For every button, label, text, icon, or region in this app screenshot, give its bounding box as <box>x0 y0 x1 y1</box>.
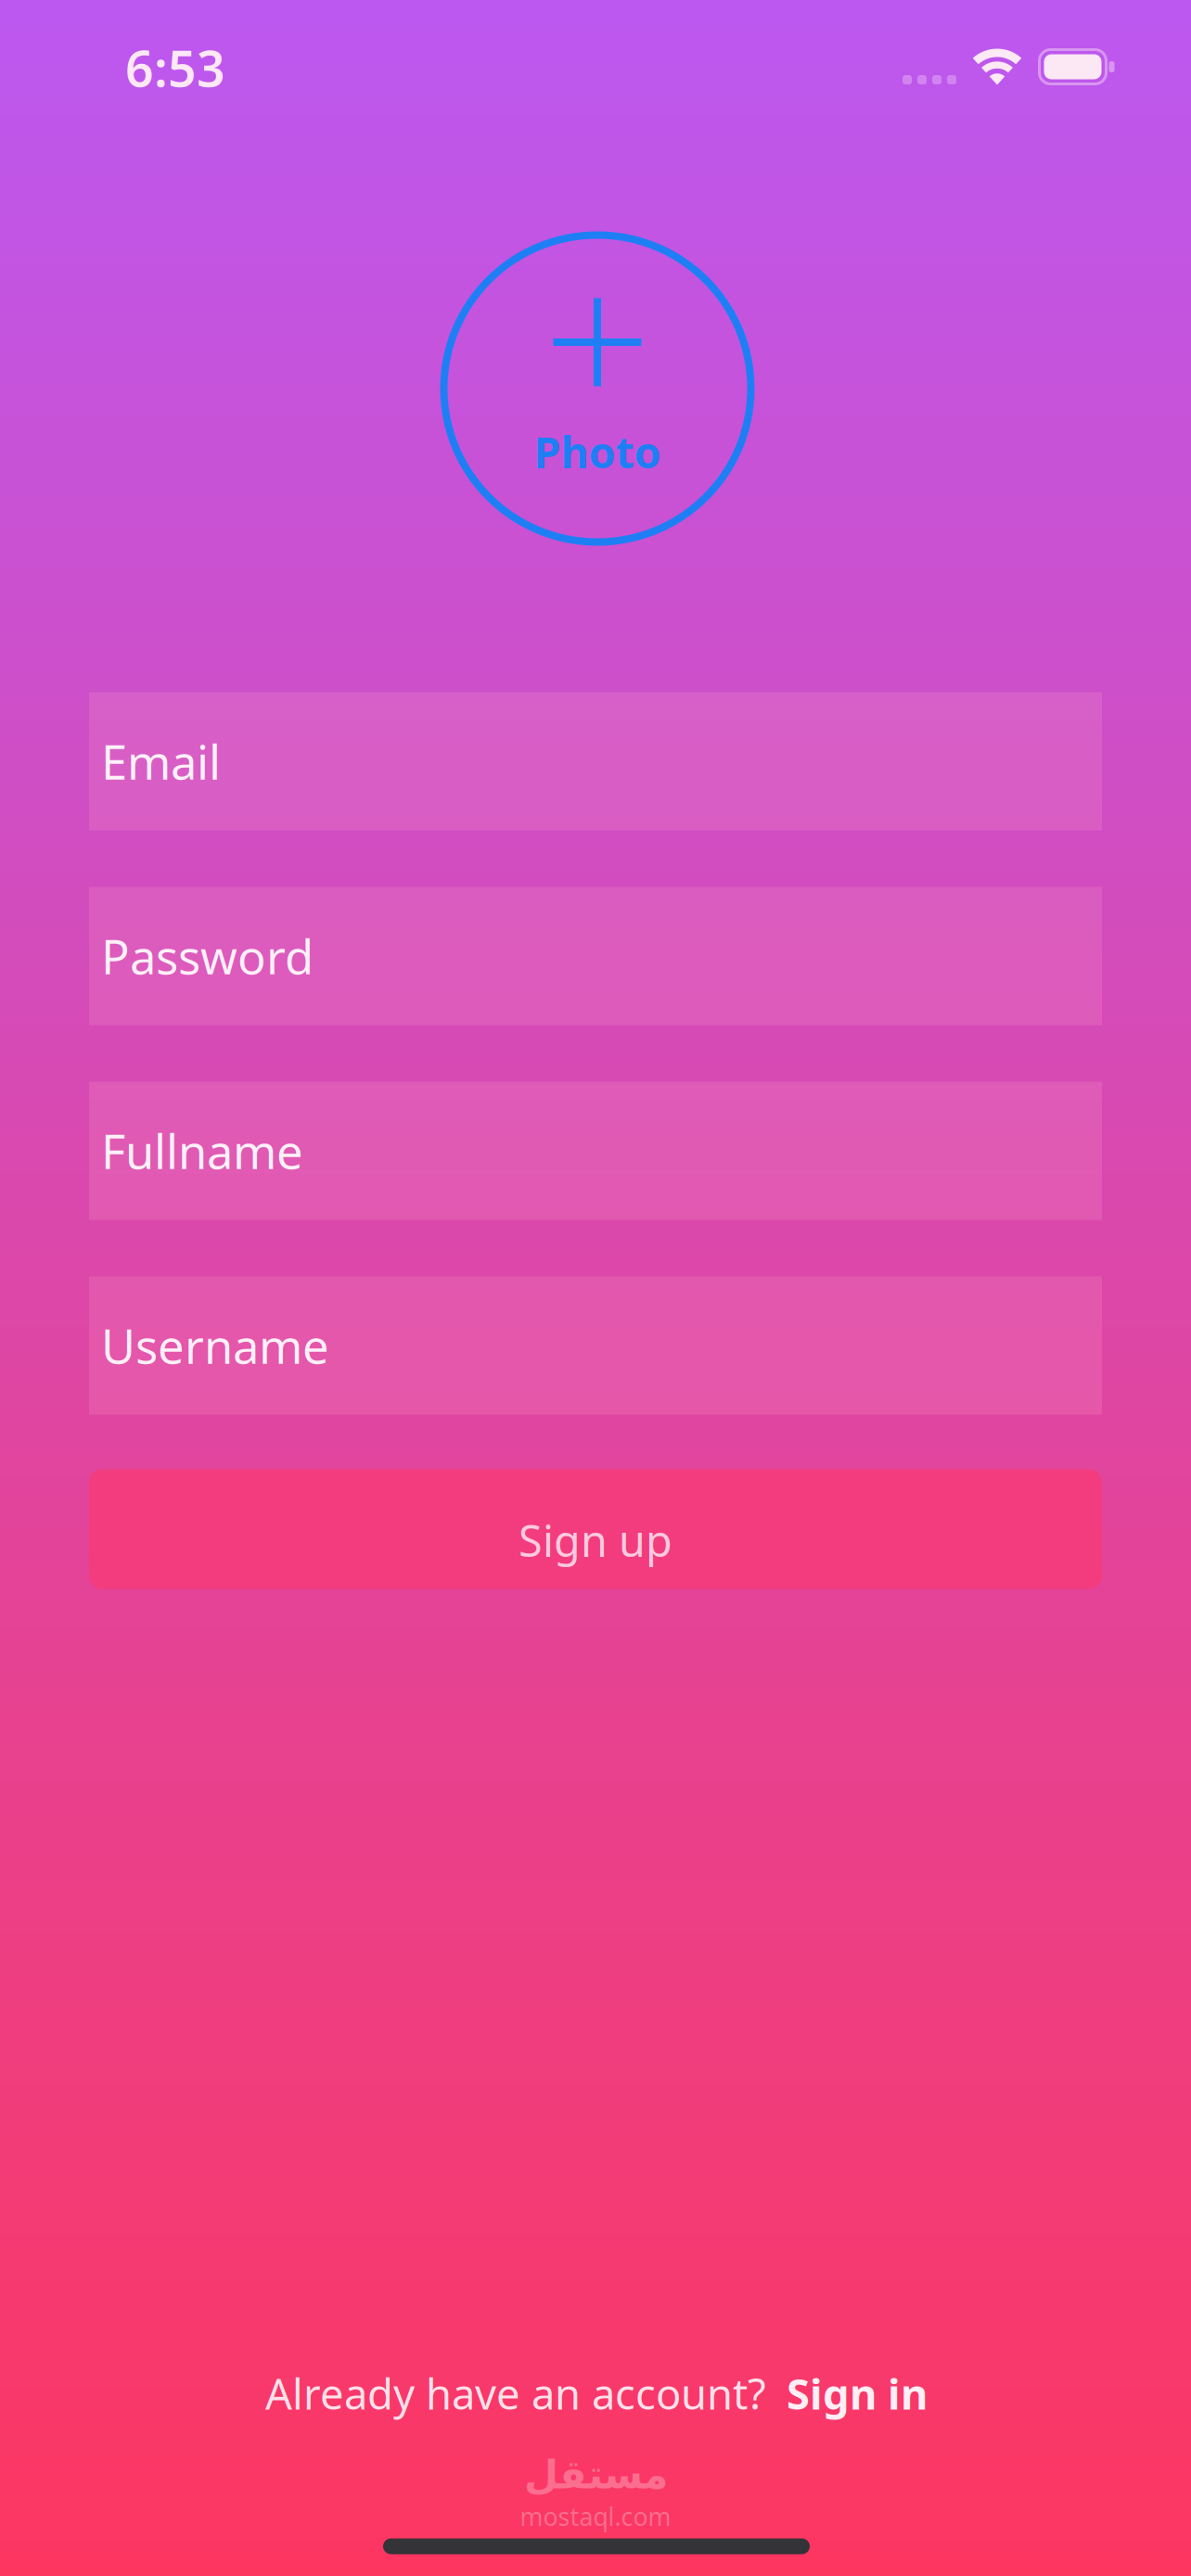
staticText: Password <box>101 925 314 987</box>
staticText: Sign in <box>787 2365 928 2421</box>
button[interactable]: Add photo <box>440 231 755 546</box>
staticText: Sign up <box>519 1511 672 1569</box>
button[interactable]: Username <box>89 1276 1102 1415</box>
button[interactable]: Email <box>89 692 1102 830</box>
button[interactable]: Fullname <box>89 1082 1102 1220</box>
staticText: mostaql.com <box>520 2500 671 2533</box>
staticText: Username <box>101 1314 329 1377</box>
staticText: Photo <box>534 423 661 480</box>
staticText: Email <box>101 730 221 793</box>
button[interactable]: Already have an account? <box>265 2365 928 2421</box>
staticText: Fullname <box>101 1120 303 1182</box>
button[interactable]: Password <box>89 887 1102 1025</box>
staticText: مستقل <box>524 2452 667 2497</box>
button[interactable]: Sign up <box>89 1469 1102 1589</box>
staticText: 6:53 <box>125 35 225 101</box>
staticText: Already have an account? <box>265 2365 766 2421</box>
